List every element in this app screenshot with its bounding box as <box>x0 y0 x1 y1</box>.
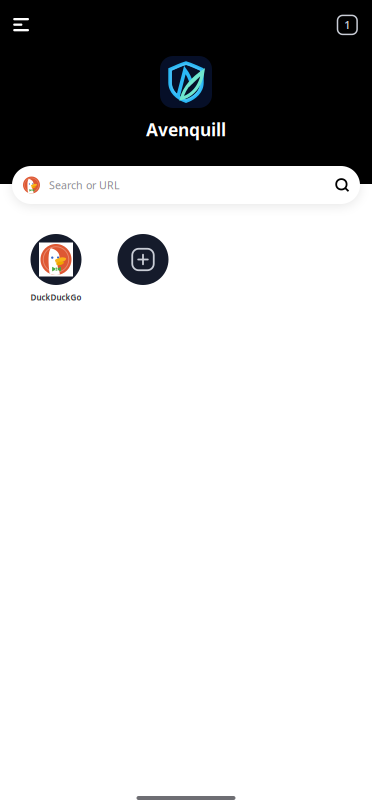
staticText: 1 <box>344 18 350 32</box>
staticText: DuckDuckGo <box>30 292 81 303</box>
button[interactable]: DuckDuckGo <box>18 234 94 303</box>
button[interactable]: Search or URL <box>12 166 360 204</box>
button[interactable] <box>105 234 181 303</box>
button[interactable]: Tabs, 1 open <box>322 0 372 48</box>
staticText: Search or URL <box>49 178 120 192</box>
button[interactable]: Menu <box>0 0 44 48</box>
staticText: Avenquill <box>146 118 226 141</box>
